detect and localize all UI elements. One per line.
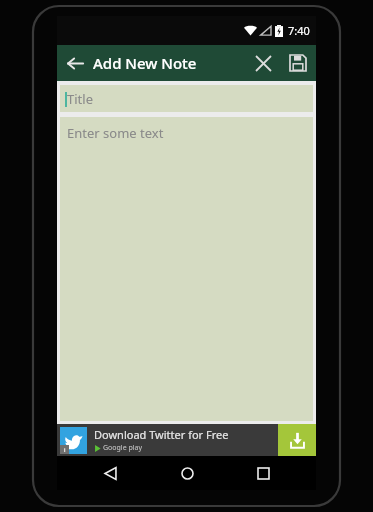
button[interactable]: Recent apps — [239, 456, 287, 490]
staticText: Download Twitter for Free — [94, 427, 229, 442]
button[interactable]: Discard — [246, 45, 280, 81]
button[interactable]: Back — [86, 456, 134, 490]
staticText: Google play — [103, 443, 143, 453]
staticText: i — [64, 446, 66, 454]
button[interactable]: Back — [57, 45, 93, 81]
staticText: Title — [67, 90, 93, 108]
button[interactable]: Install — [278, 424, 316, 456]
button[interactable]: Enter some text — [60, 117, 313, 421]
staticText: Add New Note — [93, 53, 246, 73]
staticText: Enter some text — [67, 124, 164, 142]
button[interactable]: Home — [163, 456, 211, 490]
button[interactable]: Save — [280, 45, 316, 81]
button[interactable]: Title — [60, 85, 313, 112]
button[interactable]: i — [57, 424, 316, 456]
staticText: 7:40 — [288, 23, 310, 38]
